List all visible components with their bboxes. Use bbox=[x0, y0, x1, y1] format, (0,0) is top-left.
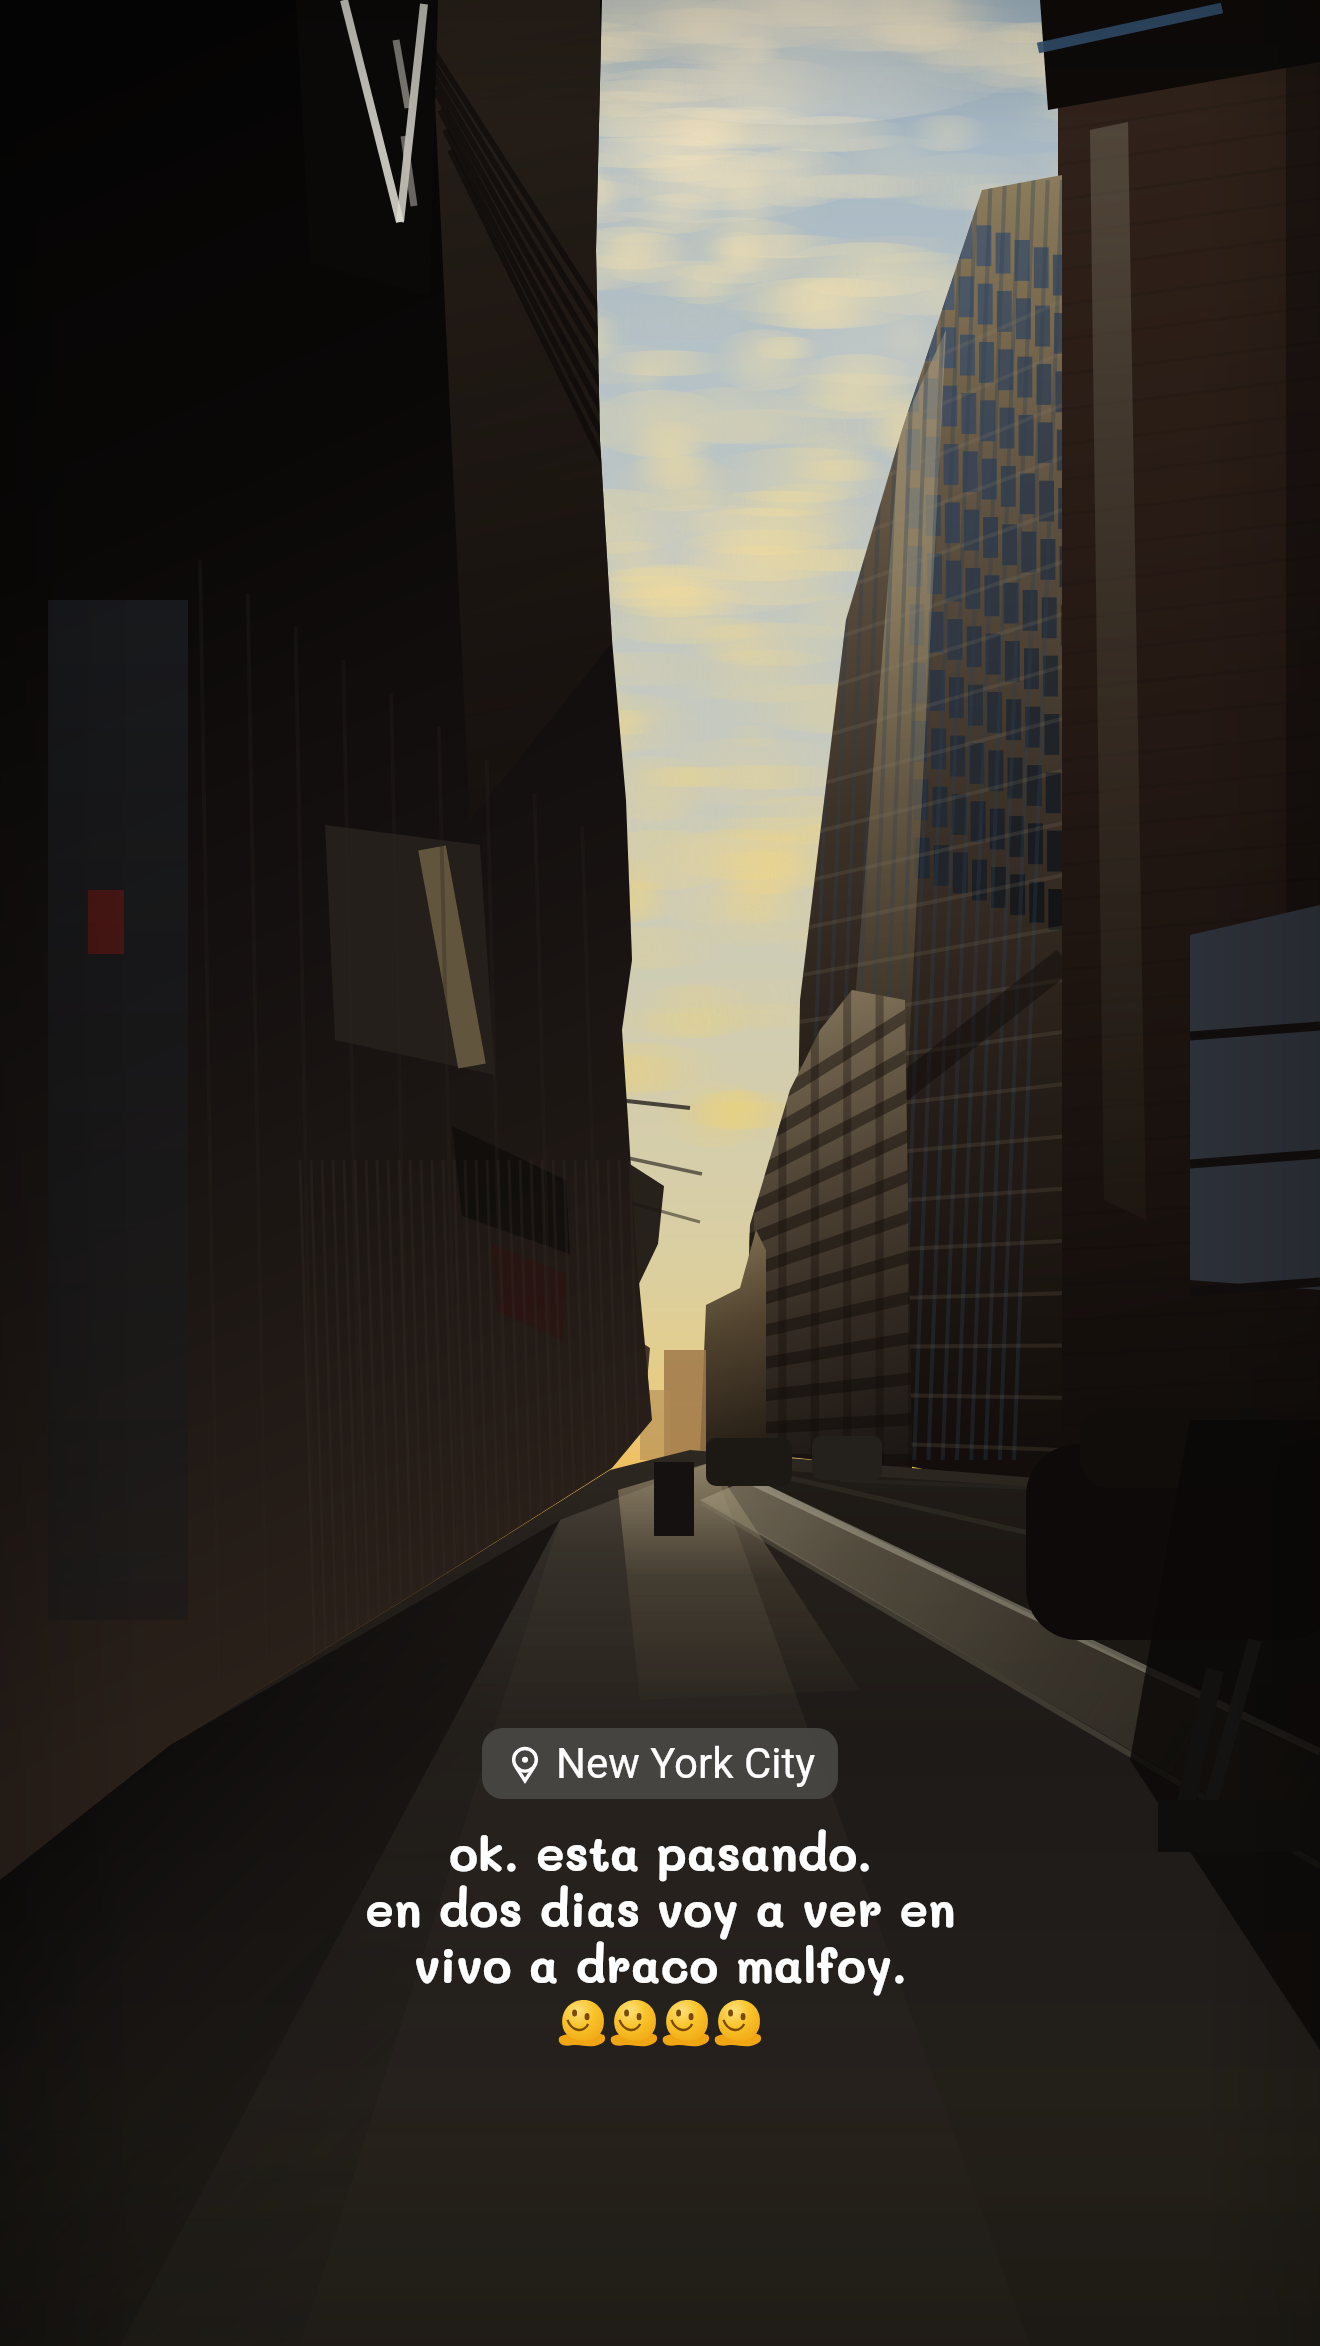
button[interactable]: ok. esta pasando. en dos dias voy a ver … bbox=[365, 1821, 956, 1995]
button[interactable]: Location bbox=[482, 1728, 838, 1799]
button[interactable]: Melting face reaction bbox=[556, 1997, 764, 2049]
staticText: New York City bbox=[556, 1739, 816, 1788]
other: Location bbox=[504, 1743, 546, 1785]
